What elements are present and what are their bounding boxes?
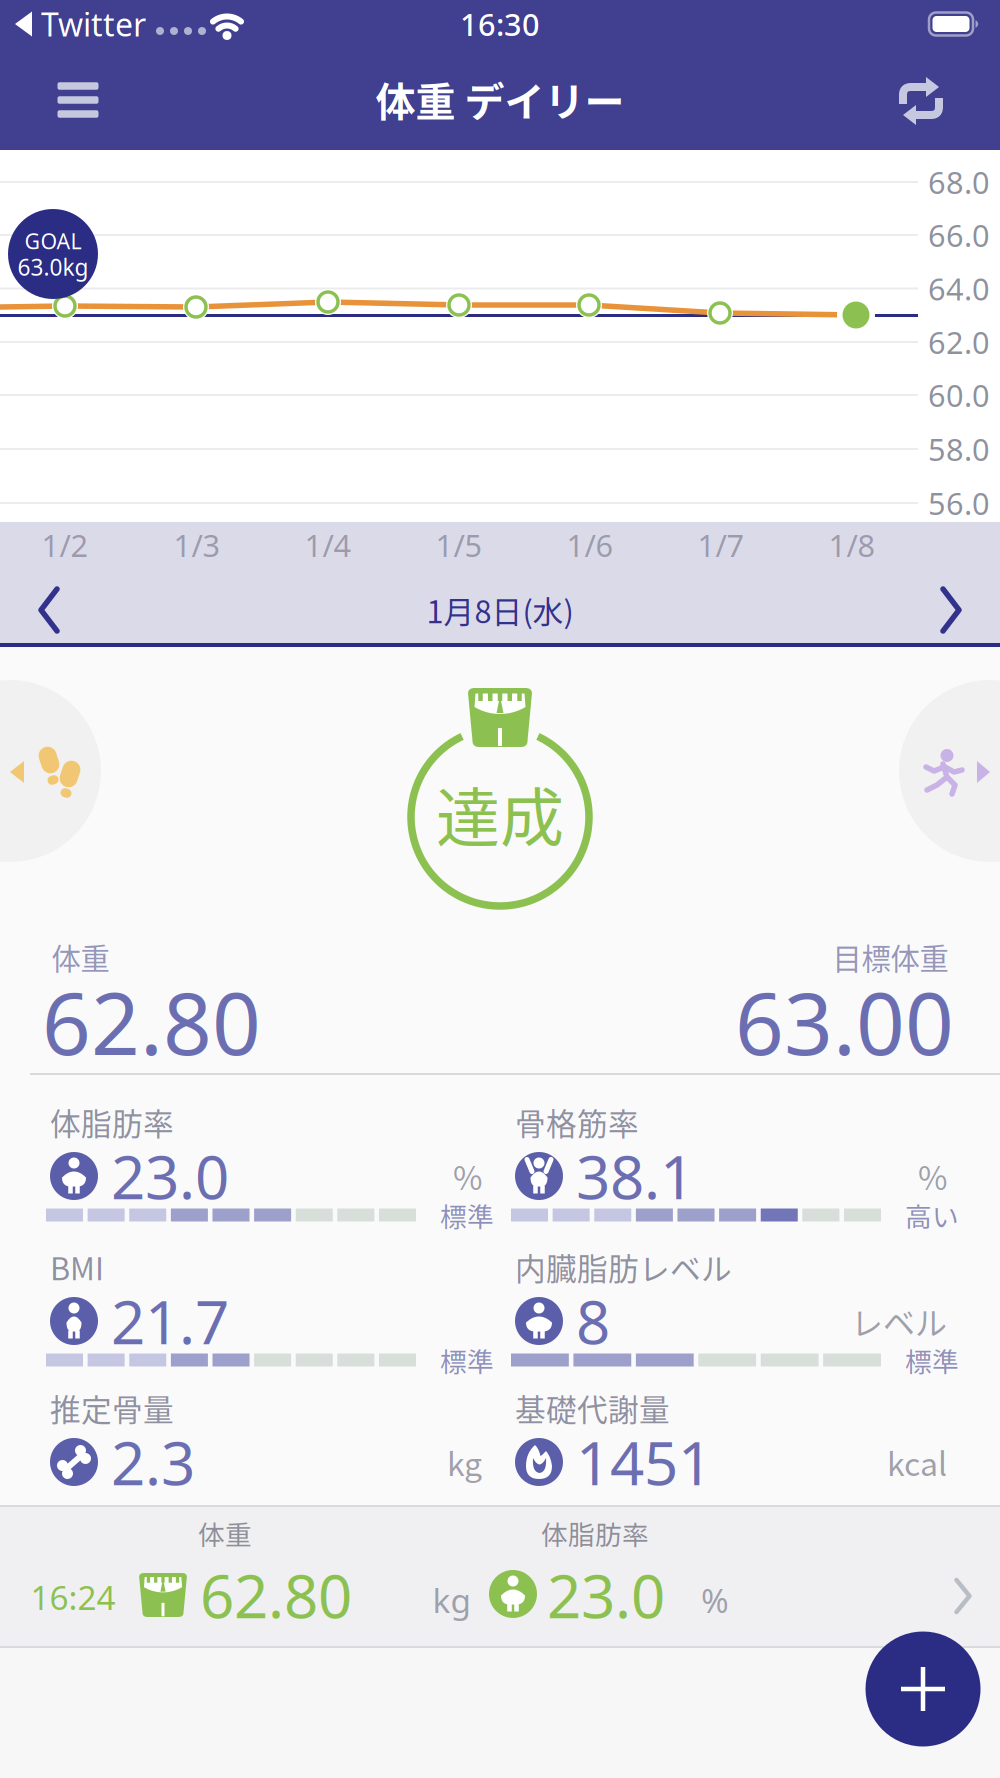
- staticText: 1/4: [304, 525, 351, 565]
- button[interactable]: Back to Twitter: [0, 0, 1000, 1778]
- button[interactable]: Menu: [0, 0, 1000, 1778]
- staticText: 達成: [436, 767, 564, 859]
- staticText: 63.0kg: [17, 252, 88, 282]
- staticText: 8: [576, 1281, 610, 1361]
- staticText: kg: [447, 1439, 482, 1485]
- staticText: 56.0: [928, 483, 990, 523]
- staticText: 62.0: [928, 322, 990, 362]
- button[interactable]: 最新の測定値: [0, 0, 1000, 1778]
- staticText: 62.80: [42, 965, 261, 1079]
- staticText: 21.7: [111, 1281, 229, 1361]
- staticText: 63.00: [735, 965, 954, 1079]
- staticText: 1/5: [435, 525, 482, 565]
- staticText: 2.3: [111, 1422, 195, 1502]
- staticText: 1/2: [41, 525, 88, 565]
- staticText: 標準: [440, 1341, 494, 1379]
- staticText: 68.0: [928, 162, 990, 202]
- staticText: 目標体重: [832, 936, 948, 978]
- staticText: 23.0: [547, 1555, 665, 1635]
- button[interactable]: Next day: [0, 0, 1000, 1778]
- staticText: 64.0: [928, 268, 990, 309]
- staticText: 体脂肪率: [50, 1100, 174, 1144]
- button[interactable]: 歩数ページへ: [0, 0, 1000, 1778]
- staticText: 標準: [440, 1196, 494, 1234]
- staticText: 60.0: [928, 375, 990, 415]
- staticText: 基礎代謝量: [515, 1386, 670, 1430]
- staticText: 体重: [51, 936, 109, 978]
- button[interactable]: Sync: [0, 0, 1000, 1778]
- staticText: 骨格筋率: [515, 1100, 639, 1144]
- staticText: 23.0: [111, 1136, 229, 1216]
- button[interactable]: 測定値を追加: [0, 0, 1000, 1778]
- staticText: 1/6: [566, 525, 613, 565]
- staticText: 16:30: [460, 4, 540, 44]
- staticText: 1451: [576, 1422, 712, 1502]
- staticText: 内臓脂肪レベル: [515, 1245, 732, 1289]
- staticText: 1/7: [697, 525, 744, 565]
- staticText: %: [453, 1153, 482, 1199]
- staticText: 体重 デイリー: [375, 70, 624, 128]
- staticText: 標準: [905, 1341, 959, 1379]
- staticText: 体重: [198, 1514, 252, 1552]
- staticText: 推定骨量: [50, 1386, 174, 1430]
- button[interactable]: Previous day: [0, 0, 1000, 1778]
- staticText: 38.1: [576, 1136, 694, 1216]
- staticText: %: [701, 1578, 729, 1622]
- staticText: 58.0: [928, 429, 990, 469]
- staticText: 1月8日(水): [426, 588, 573, 632]
- staticText: 66.0: [928, 215, 990, 255]
- staticText: kcal: [887, 1439, 947, 1485]
- staticText: 16:24: [30, 1575, 115, 1619]
- staticText: GOAL: [24, 227, 81, 255]
- staticText: kg: [432, 1578, 471, 1622]
- button[interactable]: 歩行ページへ: [0, 0, 1000, 1778]
- staticText: %: [918, 1153, 947, 1199]
- staticText: 1/3: [173, 525, 220, 565]
- staticText: 高い: [905, 1196, 959, 1234]
- staticText: 体脂肪率: [541, 1514, 649, 1552]
- staticText: BMI: [50, 1245, 104, 1289]
- staticText: 62.80: [200, 1555, 352, 1635]
- staticText: Twitter: [41, 3, 146, 45]
- staticText: レベル: [851, 1298, 947, 1344]
- staticText: 1/8: [828, 525, 875, 565]
